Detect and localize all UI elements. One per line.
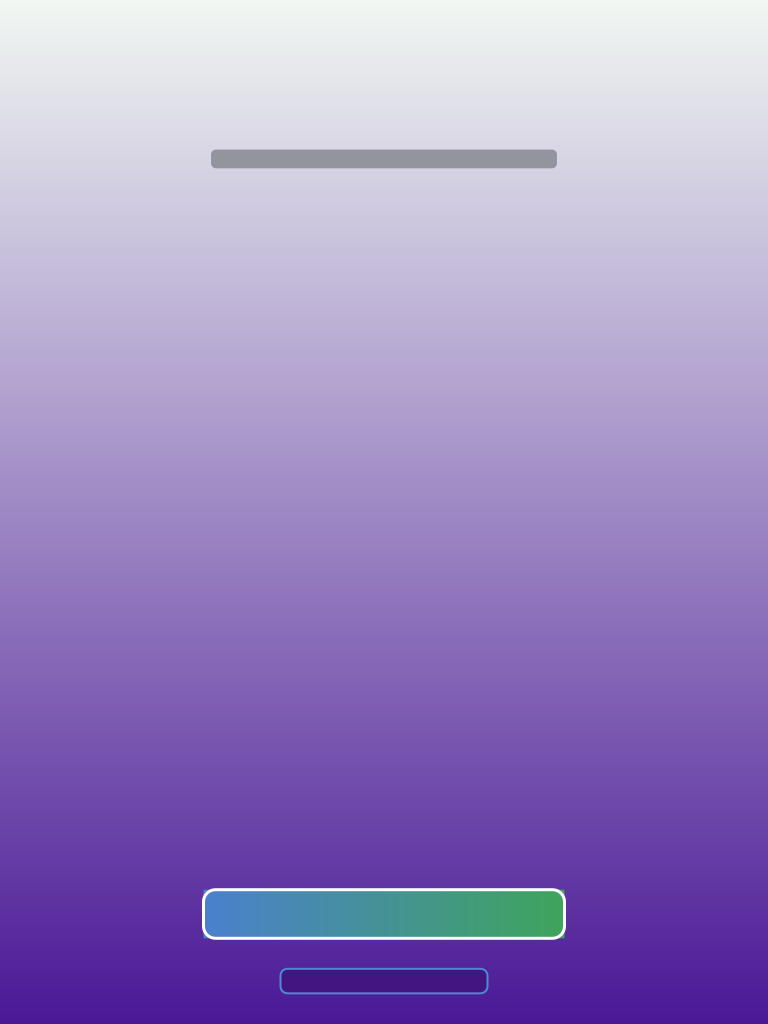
button[interactable]: Continue bbox=[203, 890, 564, 938]
button[interactable]: More options bbox=[280, 969, 487, 993]
